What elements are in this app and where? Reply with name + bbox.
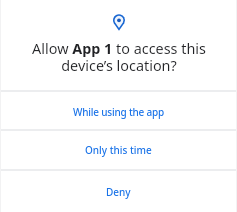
button[interactable]: Deny <box>0 171 237 212</box>
staticText: While using the app <box>73 105 165 119</box>
button[interactable]: Only this time <box>0 131 237 169</box>
staticText: Allow App 1 to access this device’s loca… <box>32 39 206 76</box>
staticText: Only this time <box>85 143 152 157</box>
button[interactable]: While using the app <box>0 92 237 129</box>
staticText: Deny <box>106 185 131 199</box>
